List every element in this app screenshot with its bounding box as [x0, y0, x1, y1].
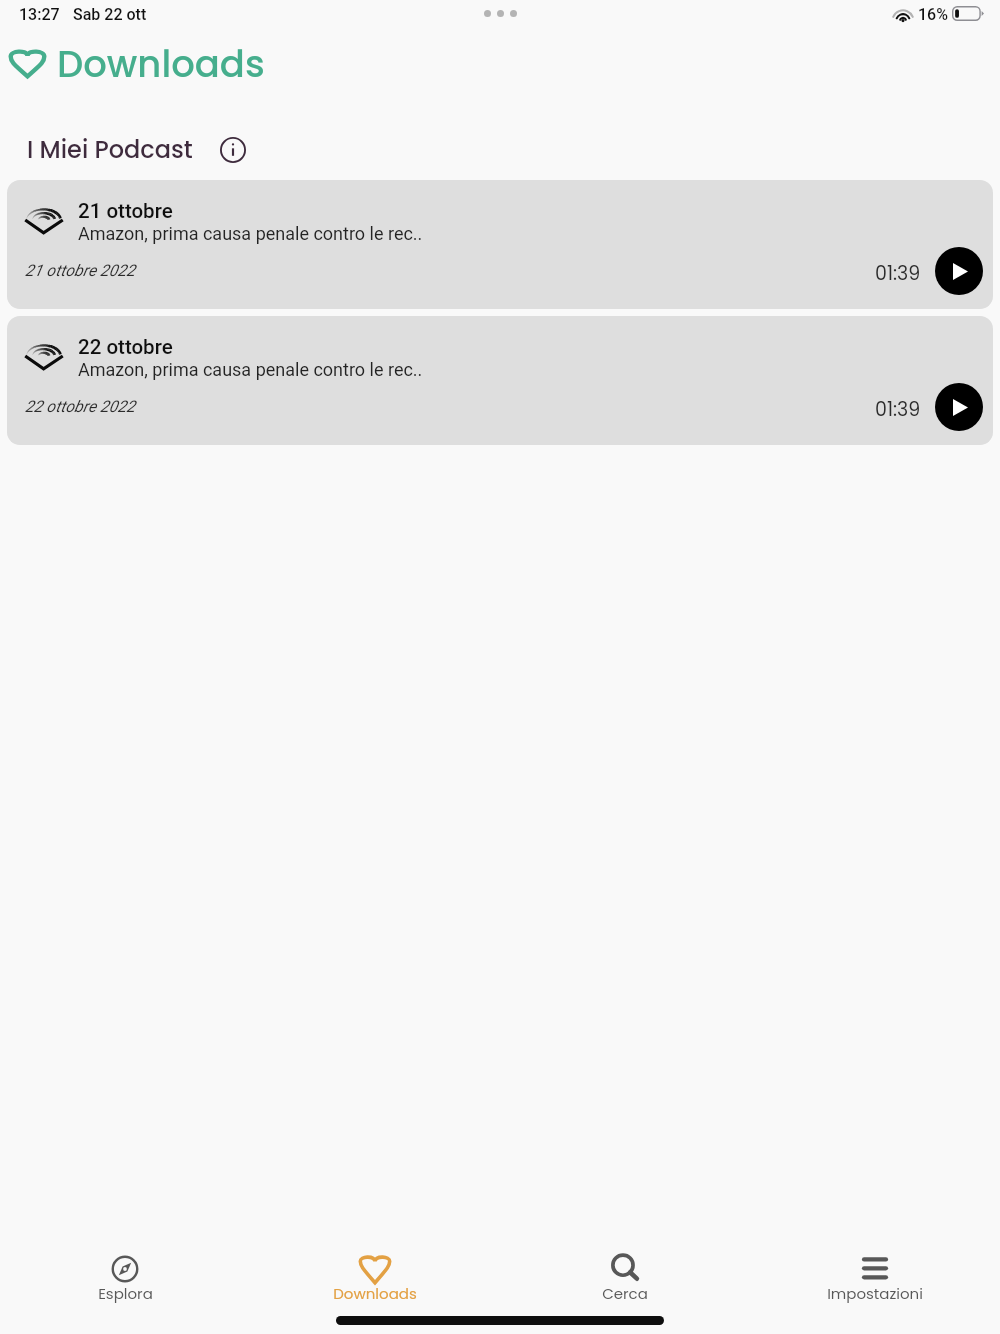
staticText: Amazon, prima causa penale contro le rec… [78, 359, 423, 380]
button[interactable]: Downloads [250, 1253, 500, 1306]
staticText: 13:27 [19, 5, 60, 24]
staticText: 21 ottobre 2022 [25, 261, 135, 280]
staticText: Downloads [333, 1283, 417, 1304]
staticText: 01:39 [875, 260, 921, 287]
button[interactable]: Riproduci [935, 383, 983, 431]
staticText: Impostazioni [827, 1283, 923, 1304]
button[interactable]: Riproduci [935, 247, 983, 295]
staticText: Cerca [602, 1283, 648, 1304]
staticText: I Miei Podcast [27, 133, 193, 167]
button[interactable]: Informazioni [218, 135, 248, 165]
staticText: 21 ottobre [78, 199, 173, 223]
staticText: 01:39 [875, 396, 921, 423]
button[interactable]: 22 ottobre [7, 316, 993, 445]
button[interactable]: 21 ottobre [7, 180, 993, 309]
button[interactable]: Esplora [0, 1253, 250, 1306]
staticText: 22 ottobre [78, 335, 173, 359]
button[interactable]: Impostazioni [750, 1253, 1000, 1306]
staticText: Amazon, prima causa penale contro le rec… [78, 223, 423, 244]
staticText: Esplora [98, 1283, 153, 1304]
staticText: Sab 22 ott [73, 5, 147, 24]
staticText: 16% [918, 5, 948, 24]
button[interactable]: Cerca [500, 1253, 750, 1306]
staticText: 22 ottobre 2022 [25, 397, 135, 416]
staticText: Downloads [57, 38, 265, 90]
